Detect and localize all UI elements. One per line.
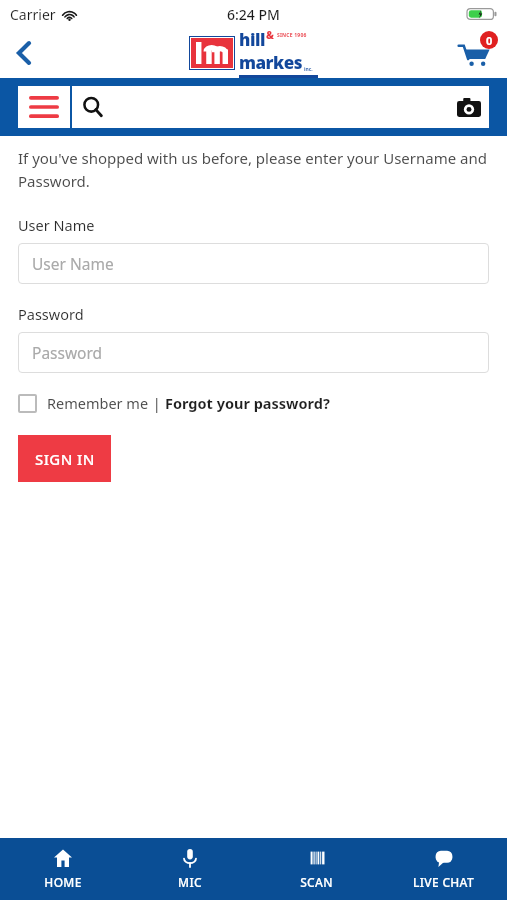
staticText: SCAN: [300, 874, 333, 890]
staticText: MIC: [178, 874, 202, 890]
button[interactable]: MIC: [126, 838, 253, 900]
staticText: |: [149, 393, 165, 413]
button[interactable]: Menu: [18, 86, 70, 128]
button[interactable]: Forgot your password?: [165, 393, 330, 413]
staticText: Password: [32, 342, 103, 363]
button[interactable]: SCAN: [253, 838, 380, 900]
button[interactable]: User Name: [18, 243, 489, 284]
staticText: hill: [239, 28, 265, 51]
button[interactable]: Search by camera: [72, 86, 489, 128]
staticText: User Name: [32, 253, 114, 274]
button[interactable]: Back: [0, 29, 48, 77]
button[interactable]: HOME: [0, 838, 126, 900]
staticText: 0: [486, 33, 493, 48]
staticText: &: [266, 28, 274, 42]
button[interactable]: SIGN IN: [18, 435, 111, 482]
button[interactable]: Hill and Markes logo: [189, 28, 318, 78]
staticText: SIGN IN: [35, 449, 95, 469]
button[interactable]: Password: [18, 332, 489, 373]
staticText: Remember me: [47, 393, 149, 413]
button[interactable]: LIVE CHAT: [380, 838, 507, 900]
button[interactable]: Remember me: [18, 393, 149, 413]
staticText: SINCE 1906: [277, 32, 307, 39]
staticText: Password: [18, 304, 84, 324]
button[interactable]: Search by camera: [449, 87, 489, 127]
staticText: HOME: [44, 874, 82, 890]
staticText: If you've shopped with us before, please…: [18, 148, 489, 191]
staticText: LIVE CHAT: [413, 874, 474, 890]
staticText: inc.: [304, 66, 313, 73]
staticText: markes: [239, 51, 303, 74]
staticText: User Name: [18, 215, 95, 235]
staticText: Carrier: [10, 5, 56, 24]
button[interactable]: Cart, 0 items: [451, 29, 499, 77]
staticText: Forgot your password?: [165, 393, 330, 413]
staticText: 6:24 PM: [227, 5, 280, 24]
